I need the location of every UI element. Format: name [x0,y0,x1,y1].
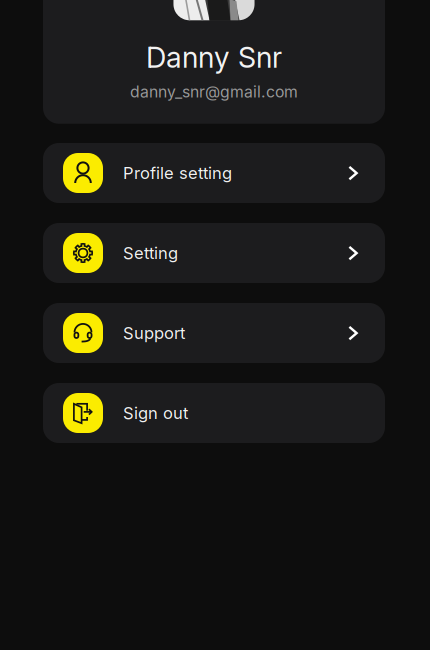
staticText: Setting [123,243,178,263]
staticText: danny_snr@gmail.com [130,82,298,101]
button[interactable]: Support [43,303,385,363]
button[interactable]: Profile setting [43,143,385,203]
button[interactable]: Sign out [43,383,385,443]
staticText: Support [123,323,185,343]
staticText: Danny Snr [146,40,282,75]
staticText: Profile setting [123,163,232,183]
staticText: Sign out [123,403,188,423]
button[interactable]: Setting [43,223,385,283]
